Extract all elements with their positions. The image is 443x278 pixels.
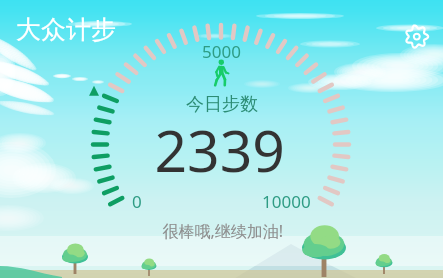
button[interactable]: Settings: [398, 20, 432, 54]
